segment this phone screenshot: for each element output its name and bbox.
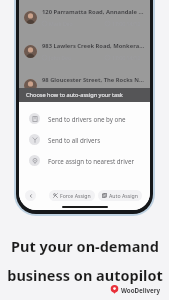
button[interactable]: Force assign to nearest driver — [19, 150, 150, 171]
staticText: WooDelivery — [121, 286, 161, 294]
staticText: Put your on-demand — [11, 236, 159, 256]
staticText: Auto Assign — [109, 192, 138, 199]
button[interactable]: Send to drivers one by one — [19, 108, 150, 129]
staticText: Force assign to nearest driver — [48, 157, 134, 165]
staticText: Send to all drivers — [48, 136, 101, 144]
button[interactable]: 983 Lawlers Creek Road, Monkerai NSW, Au… — [19, 34, 150, 68]
staticText: 98 Gloucester Street, The Rocks NSW, Aus… — [42, 76, 145, 84]
staticText: Choose how to auto-assign your task — [26, 91, 123, 99]
staticText: John Deo — [49, 88, 72, 95]
staticText: 120 Parramatta Road, Annandale NSW — [42, 8, 145, 16]
staticText: business on autopilot — [7, 265, 163, 285]
staticText: Force Assign — [60, 192, 91, 199]
button[interactable]: 98 Gloucester Street, The Rocks NSW, Aus… — [19, 68, 150, 102]
button[interactable]: Force Assign — [49, 190, 95, 201]
button[interactable]: Auto Assign — [98, 190, 142, 201]
staticText: 983 Lawlers Creek Road, Monkerai NSW, Au… — [42, 42, 145, 50]
staticText: 17:00 14/12 — [112, 88, 141, 95]
button[interactable]: 120 Parramatta Road, Annandale NSW — [19, 0, 150, 34]
button[interactable]: WooDelivery — [110, 285, 161, 294]
button[interactable]: Send to all drivers — [19, 129, 150, 150]
staticText: Send to drivers one by one — [48, 115, 126, 123]
button[interactable]: Back — [25, 190, 36, 201]
